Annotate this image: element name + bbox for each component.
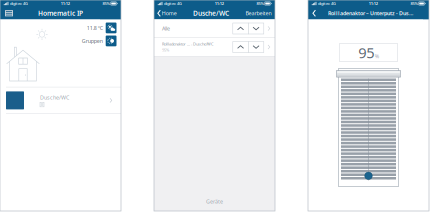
staticText: Rollladenaktor – Unterputz - Dusche/... xyxy=(328,10,415,17)
button[interactable]: Rollladenaktor ... - Dusche/WC xyxy=(154,38,275,56)
button[interactable]: Up xyxy=(233,41,248,52)
staticText: Gruppen xyxy=(82,37,103,44)
staticText: Home xyxy=(162,10,177,17)
staticText: 11:12 xyxy=(215,1,224,6)
button[interactable]: Down xyxy=(248,41,264,52)
staticText: 85% xyxy=(102,1,109,6)
staticText: Dusche/WC xyxy=(40,94,69,101)
staticText: Homematic IP xyxy=(38,9,83,18)
button[interactable]: Home xyxy=(154,7,177,19)
staticText: digitec 4G xyxy=(318,1,336,6)
staticText: 11:12 xyxy=(369,1,378,6)
staticText: Alle xyxy=(162,25,170,32)
staticText: 11.8 °C xyxy=(87,24,103,31)
staticText: Dusche/WC xyxy=(193,9,229,18)
staticText: digitec 4G xyxy=(164,1,182,6)
staticText: 95 xyxy=(358,43,374,62)
staticText: Bearbeiten xyxy=(245,10,271,17)
button[interactable]: Down xyxy=(248,23,264,34)
button[interactable]: Bearbeiten xyxy=(245,7,275,19)
button[interactable]: Up xyxy=(233,23,248,34)
staticText: 85% xyxy=(410,1,417,6)
button[interactable]: Back xyxy=(308,7,320,19)
staticText: Geräte xyxy=(206,198,223,205)
staticText: digitec 4G xyxy=(10,1,28,6)
staticText: 11:12 xyxy=(61,1,70,6)
staticText: Rollladenaktor ... - Dusche/WC xyxy=(162,41,214,47)
staticText: 95% xyxy=(162,47,169,53)
staticText: % xyxy=(375,53,379,60)
button[interactable]: Menu xyxy=(0,7,21,19)
button[interactable]: Alle xyxy=(154,19,275,37)
staticText: 85% xyxy=(256,1,263,6)
button[interactable]: Dusche/WC xyxy=(0,87,121,113)
